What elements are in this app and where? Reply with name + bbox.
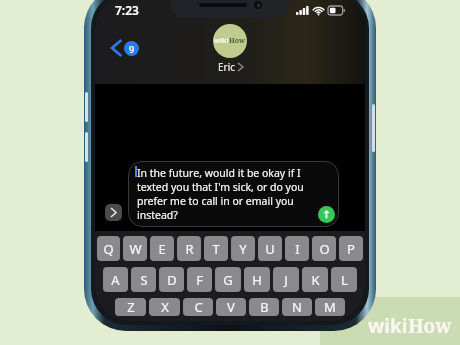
- button[interactable]: F: [187, 267, 212, 292]
- button[interactable]: Send: [318, 206, 335, 223]
- staticText: D: [167, 271, 177, 289]
- staticText: Q: [103, 240, 114, 258]
- staticText: J: [284, 271, 288, 289]
- staticText: In the future, would it be okay if I tex…: [137, 166, 315, 222]
- staticText: B: [260, 298, 269, 316]
- staticText: K: [311, 271, 320, 289]
- staticText: S: [140, 271, 148, 289]
- staticText: W: [129, 240, 142, 258]
- button[interactable]: U: [258, 236, 282, 261]
- button[interactable]: W: [123, 236, 147, 261]
- button[interactable]: J: [273, 267, 299, 292]
- button[interactable]: M: [315, 298, 345, 316]
- button[interactable]: Back to messages: [109, 38, 142, 58]
- button[interactable]: E: [150, 236, 174, 261]
- staticText: A: [111, 271, 120, 289]
- staticText: 9: [129, 43, 135, 55]
- button[interactable]: V: [216, 298, 246, 316]
- button[interactable]: I: [285, 236, 309, 261]
- staticText: Eric: [218, 60, 236, 74]
- staticText: How: [229, 36, 246, 46]
- button[interactable]: L: [331, 267, 357, 292]
- staticText: 7:23: [115, 2, 139, 18]
- button[interactable]: Y: [231, 236, 255, 261]
- button[interactable]: Q: [97, 236, 120, 261]
- button[interactable]: T: [204, 236, 228, 261]
- button[interactable]: Z: [115, 298, 146, 316]
- staticText: R: [185, 240, 194, 258]
- button[interactable]: A: [103, 267, 128, 292]
- staticText: O: [319, 240, 330, 258]
- staticText: I: [295, 240, 300, 258]
- staticText: T: [212, 240, 220, 258]
- button[interactable]: C: [183, 298, 213, 316]
- staticText: G: [223, 271, 233, 289]
- staticText: X: [161, 298, 169, 316]
- button[interactable]: H: [244, 267, 270, 292]
- staticText: How: [408, 313, 452, 339]
- staticText: L: [341, 271, 348, 289]
- staticText: Y: [239, 240, 247, 258]
- button[interactable]: S: [131, 267, 156, 292]
- staticText: wiki: [214, 36, 229, 46]
- staticText: U: [265, 240, 275, 258]
- staticText: wiki: [368, 313, 408, 339]
- staticText: C: [194, 298, 203, 316]
- staticText: M: [324, 298, 336, 316]
- button[interactable]: R: [177, 236, 201, 261]
- staticText: E: [158, 240, 166, 258]
- button[interactable]: O: [312, 236, 336, 261]
- staticText: F: [196, 271, 203, 289]
- staticText: V: [227, 298, 235, 316]
- button[interactable]: wiki: [213, 24, 247, 74]
- staticText: Z: [127, 298, 135, 316]
- button[interactable]: K: [302, 267, 328, 292]
- button[interactable]: X: [149, 298, 180, 316]
- button[interactable]: B: [249, 298, 279, 316]
- staticText: N: [292, 298, 302, 316]
- button[interactable]: D: [159, 267, 184, 292]
- button[interactable]: In the future, would it be okay if I tex…: [128, 161, 339, 227]
- staticText: H: [252, 271, 262, 289]
- button[interactable]: G: [215, 267, 241, 292]
- button[interactable]: N: [282, 298, 312, 316]
- button[interactable]: Expand options: [105, 204, 122, 221]
- button[interactable]: P: [339, 236, 363, 261]
- staticText: P: [347, 240, 355, 258]
